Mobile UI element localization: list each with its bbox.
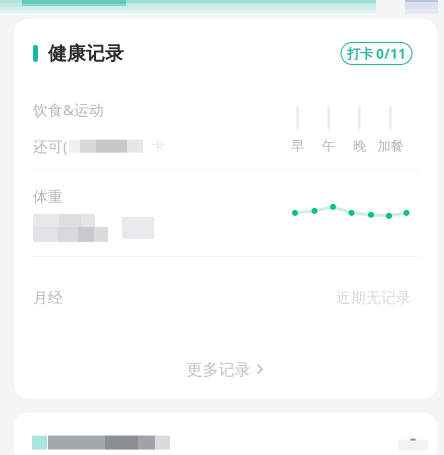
staticText: 还可( [33, 136, 67, 156]
staticText: 健康记录 [48, 42, 124, 65]
button[interactable]: 更多记录 [14, 357, 437, 383]
staticText: 近期无记录 [336, 289, 411, 307]
staticText: 饮食&运动 [33, 100, 104, 119]
staticText: 加餐 [377, 138, 403, 154]
staticText: 午 [322, 138, 335, 154]
button[interactable]: 打卡 0/11 [341, 42, 412, 64]
staticText: 卡 [152, 138, 165, 154]
staticText: 体重 [33, 188, 63, 206]
staticText: 月经 [33, 289, 63, 307]
staticText: 打卡 0/11 [347, 45, 406, 62]
staticText: 早 [291, 138, 304, 154]
staticText: 晚 [353, 138, 366, 154]
staticText: 更多记录 [186, 360, 250, 380]
